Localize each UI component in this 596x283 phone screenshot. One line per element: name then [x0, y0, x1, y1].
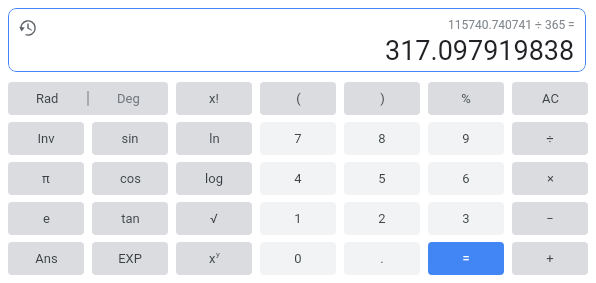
button[interactable]: 9 [428, 122, 504, 155]
button[interactable]: = [428, 242, 504, 275]
button[interactable]: π [8, 162, 84, 195]
button[interactable]: e [8, 202, 84, 235]
staticText: √ [210, 211, 218, 226]
staticText: − [546, 211, 554, 226]
staticText: tan [121, 211, 140, 226]
staticText: . [380, 251, 384, 266]
staticText: Rad [36, 91, 59, 106]
button[interactable]: cos [92, 162, 168, 195]
button[interactable]: ( [260, 82, 336, 115]
staticText: x [209, 251, 216, 266]
staticText: y [216, 250, 220, 259]
staticText: x! [209, 91, 219, 106]
button[interactable]: + [512, 242, 588, 275]
staticText: = [462, 251, 470, 266]
button[interactable]: AC [512, 82, 588, 115]
staticText: Deg [117, 91, 140, 106]
button[interactable]: Inv [8, 122, 84, 155]
staticText: 6 [462, 171, 470, 186]
staticText: % [461, 91, 471, 106]
button[interactable]: 4 [260, 162, 336, 195]
button[interactable]: 8 [344, 122, 420, 155]
staticText: × [547, 171, 554, 186]
staticText: sin [121, 131, 139, 146]
button[interactable]: 5 [344, 162, 420, 195]
button[interactable]: x! [176, 82, 252, 115]
staticText: π [42, 171, 50, 186]
button[interactable]: 7 [260, 122, 336, 155]
staticText: cos [120, 171, 141, 186]
button[interactable]: × [512, 162, 588, 195]
button[interactable]: sin [92, 122, 168, 155]
button[interactable]: Deg [89, 82, 168, 115]
staticText: e [43, 211, 50, 226]
button[interactable]: ) [344, 82, 420, 115]
staticText: 3 [462, 211, 470, 226]
button[interactable]: ln [176, 122, 252, 155]
button[interactable]: √ [176, 202, 252, 235]
staticText: + [546, 251, 554, 266]
staticText: ln [209, 131, 220, 146]
button[interactable]: History [18, 18, 38, 38]
staticText: 0 [294, 251, 302, 266]
staticText: Ans [35, 251, 58, 266]
staticText: 5 [378, 171, 386, 186]
staticText: Inv [37, 131, 55, 146]
staticText: ) [380, 91, 385, 106]
button[interactable]: 3 [428, 202, 504, 235]
button[interactable]: Ans [8, 242, 84, 275]
button[interactable]: tan [92, 202, 168, 235]
button[interactable]: x [176, 242, 252, 275]
button[interactable]: − [512, 202, 588, 235]
button[interactable]: ÷ [512, 122, 588, 155]
staticText: 7 [294, 131, 302, 146]
staticText: 317.097919838 [385, 35, 575, 67]
staticText: 8 [378, 131, 386, 146]
staticText: 4 [294, 171, 302, 186]
staticText: 9 [462, 131, 470, 146]
staticText: EXP [118, 251, 142, 266]
staticText: ( [296, 91, 301, 106]
button[interactable]: 6 [428, 162, 504, 195]
button[interactable]: 1 [260, 202, 336, 235]
button[interactable]: EXP [92, 242, 168, 275]
button[interactable]: % [428, 82, 504, 115]
staticText: 115740.740741 ÷ 365 = [448, 18, 575, 32]
staticText: AC [542, 91, 559, 106]
button[interactable]: Rad [8, 82, 87, 115]
button[interactable]: 0 [260, 242, 336, 275]
staticText: ÷ [546, 131, 554, 146]
staticText: 1 [294, 211, 302, 226]
staticText: log [205, 171, 223, 186]
button[interactable]: log [176, 162, 252, 195]
staticText: 2 [378, 211, 386, 226]
button[interactable]: 2 [344, 202, 420, 235]
